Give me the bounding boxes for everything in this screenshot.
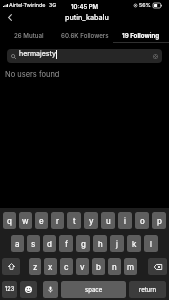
staticText: j xyxy=(116,239,118,249)
button[interactable]: Voice input xyxy=(43,281,58,298)
other: Backspace xyxy=(154,264,162,270)
button[interactable]: i xyxy=(118,212,132,229)
staticText: a xyxy=(15,239,20,249)
button[interactable]: u xyxy=(101,212,115,229)
staticText: u xyxy=(106,216,111,226)
staticText: i xyxy=(124,216,126,226)
button[interactable]: return xyxy=(129,281,166,298)
button[interactable]: Back xyxy=(0,9,19,26)
other: Emoji xyxy=(25,286,32,293)
button[interactable]: p xyxy=(152,212,166,229)
staticText: v xyxy=(80,262,85,272)
other: Shift xyxy=(8,263,15,270)
staticText: 56% xyxy=(139,2,151,9)
button[interactable]: g xyxy=(76,235,90,252)
staticText: No users found xyxy=(5,70,60,79)
button[interactable]: v xyxy=(76,258,89,275)
button[interactable]: a xyxy=(11,235,24,252)
staticText: space xyxy=(85,286,103,293)
staticText: b xyxy=(96,262,101,272)
staticText: 26 Mutual xyxy=(14,32,44,40)
staticText: 3G xyxy=(49,2,57,9)
staticText: t xyxy=(73,216,76,226)
staticText: return xyxy=(139,286,157,293)
button[interactable]: w xyxy=(19,212,32,229)
button[interactable]: s xyxy=(27,235,40,252)
other: Voice input xyxy=(48,286,53,293)
staticText: y xyxy=(89,216,94,226)
button[interactable]: Emoji xyxy=(20,281,37,298)
staticText: e xyxy=(39,216,44,226)
staticText: 60.6K Followers xyxy=(61,32,109,40)
staticText: k xyxy=(132,239,137,249)
staticText: x xyxy=(48,262,53,272)
button[interactable]: Shift xyxy=(2,258,20,275)
staticText: hermajesty xyxy=(19,49,56,57)
staticText: g xyxy=(81,239,86,249)
button[interactable]: m xyxy=(124,258,137,275)
button[interactable]: q xyxy=(3,212,16,229)
button[interactable]: h xyxy=(93,235,107,252)
staticText: z xyxy=(33,262,38,272)
staticText: m xyxy=(127,262,135,272)
button[interactable]: n xyxy=(108,258,121,275)
button[interactable]: l xyxy=(144,235,158,252)
button[interactable]: 26 Mutual xyxy=(0,28,57,43)
staticText: 123 xyxy=(5,286,15,293)
staticText: h xyxy=(98,239,103,249)
button[interactable]: c xyxy=(60,258,73,275)
button[interactable]: o xyxy=(135,212,149,229)
button[interactable]: 60.6K Followers xyxy=(57,28,113,43)
button[interactable]: d xyxy=(43,235,56,252)
button[interactable]: r xyxy=(51,212,64,229)
staticText: l xyxy=(150,239,152,249)
button[interactable]: hermajesty xyxy=(7,49,162,63)
button[interactable]: z xyxy=(29,258,41,275)
button[interactable]: k xyxy=(127,235,141,252)
button[interactable]: b xyxy=(92,258,105,275)
staticText: putin_kabalu xyxy=(65,13,109,22)
button[interactable]: 123 xyxy=(2,281,17,298)
button[interactable]: Backspace xyxy=(148,258,167,275)
button[interactable]: x xyxy=(44,258,57,275)
staticText: 10:45 PM xyxy=(71,3,99,10)
button[interactable]: Clear xyxy=(153,54,158,59)
staticText: q xyxy=(7,216,12,226)
button[interactable]: t xyxy=(67,212,81,229)
button[interactable]: 19 Following xyxy=(113,28,169,43)
staticText: c xyxy=(64,262,69,272)
staticText: s xyxy=(31,239,36,249)
button[interactable]: e xyxy=(35,212,48,229)
staticText: w xyxy=(22,216,29,226)
staticText: d xyxy=(47,239,52,249)
staticText: r xyxy=(56,216,60,226)
button[interactable]: j xyxy=(110,235,124,252)
staticText: Airtel·Twirinde xyxy=(9,2,46,9)
staticText: 19 Following xyxy=(122,32,160,40)
button[interactable]: y xyxy=(84,212,98,229)
staticText: n xyxy=(112,262,117,272)
staticText: f xyxy=(65,239,68,249)
button[interactable]: space xyxy=(61,281,126,298)
button[interactable]: f xyxy=(59,235,73,252)
staticText: p xyxy=(157,216,162,226)
staticText: o xyxy=(140,216,145,226)
